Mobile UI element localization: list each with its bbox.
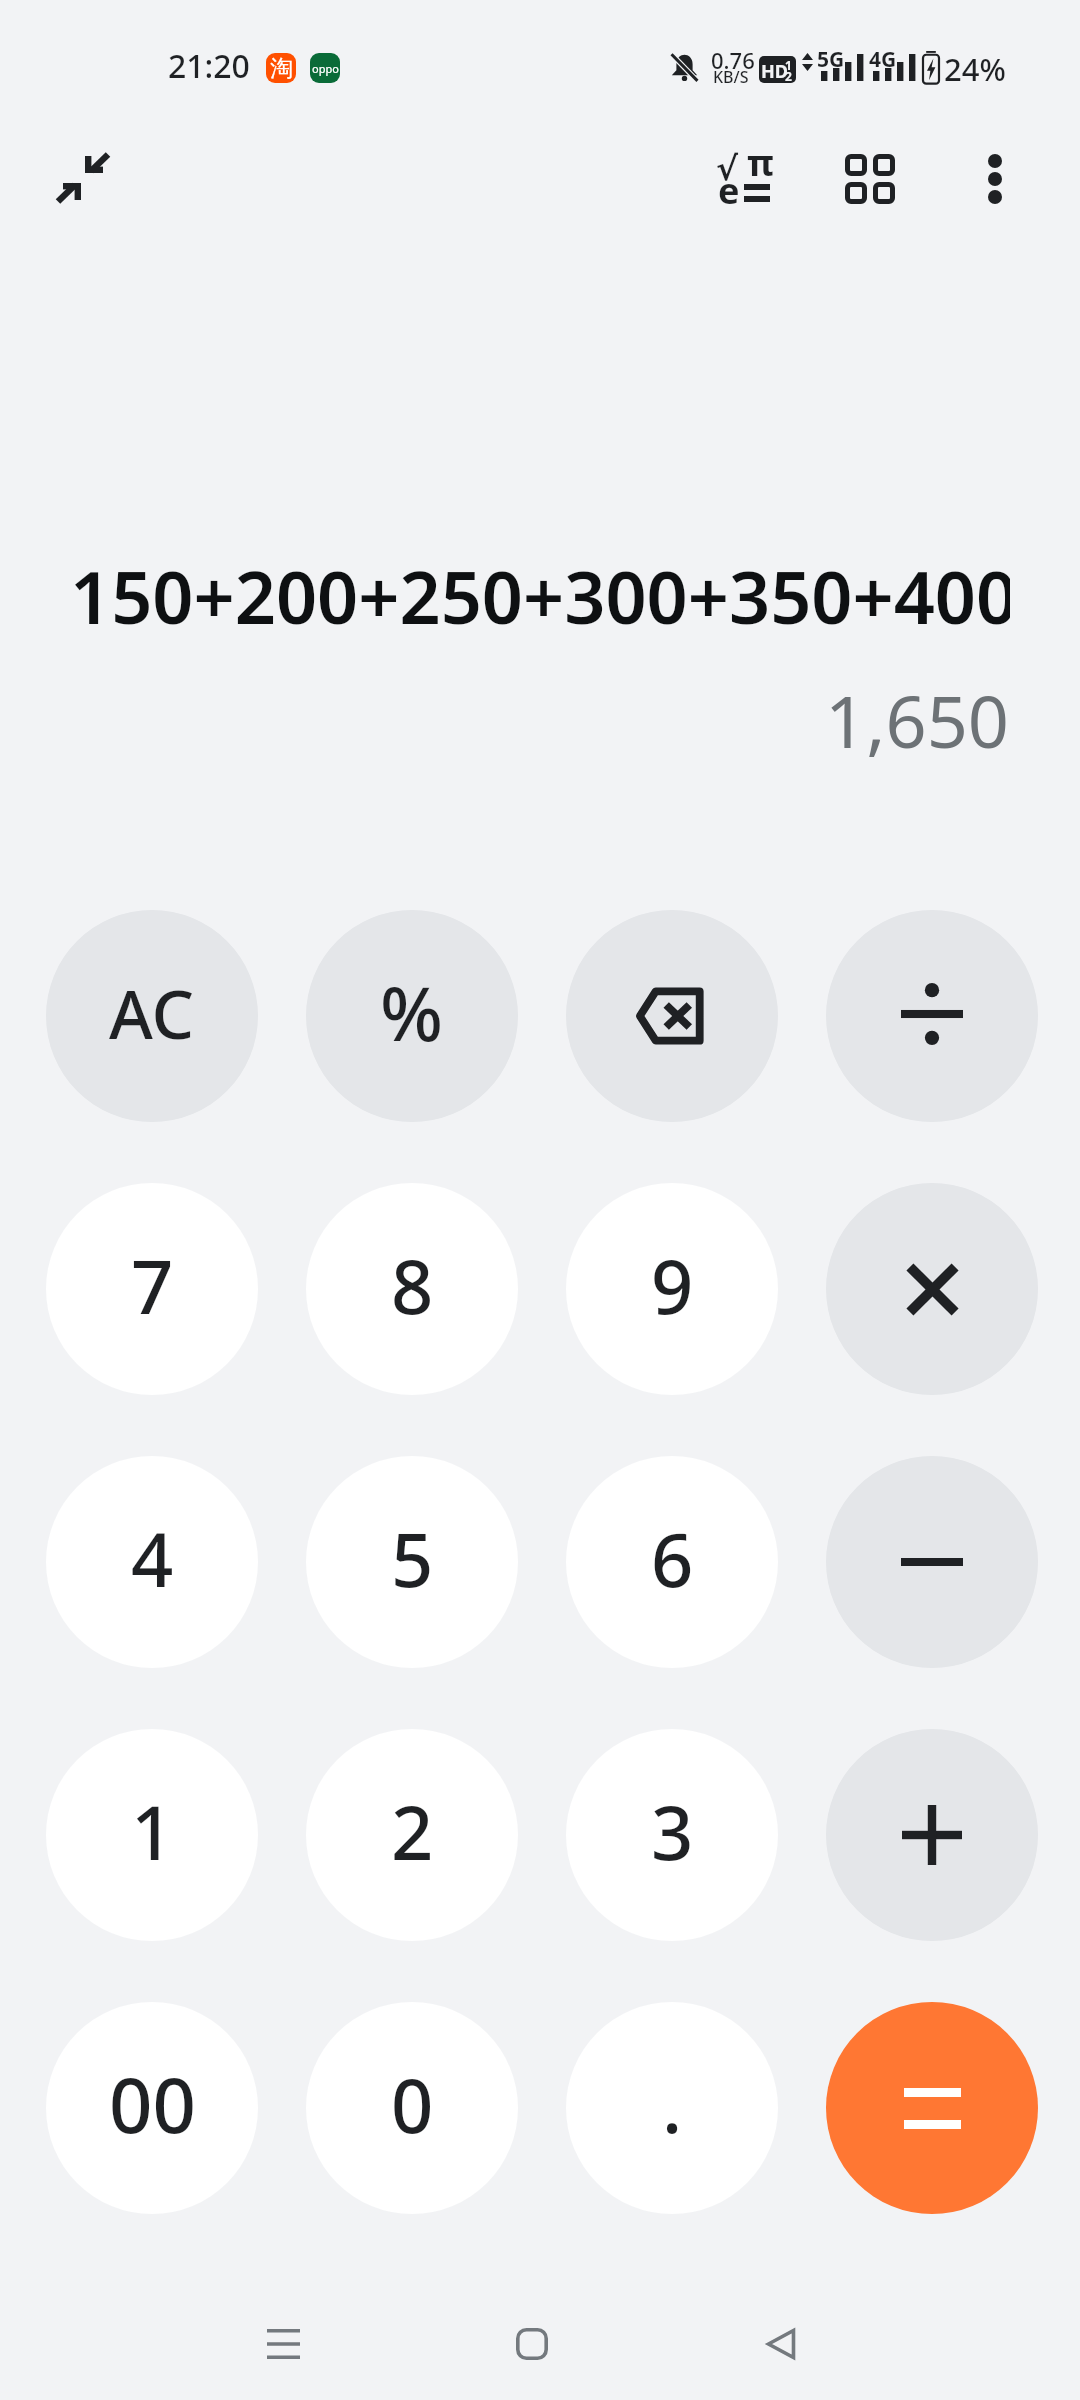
staticText: 0: [391, 2054, 434, 2155]
button[interactable]: More options: [940, 124, 1050, 234]
button[interactable]: 4: [46, 1456, 258, 1668]
button[interactable]: Equals: [826, 2002, 1038, 2214]
staticText: 7: [131, 1235, 174, 1336]
staticText: 4G: [869, 45, 909, 74]
staticText: 4: [131, 1508, 174, 1609]
staticText: 24%: [944, 48, 1006, 90]
button[interactable]: Subtract: [826, 1456, 1038, 1668]
staticText: 1: [131, 1781, 174, 1882]
staticText: AC: [109, 967, 195, 1058]
button[interactable]: Backspace: [566, 910, 778, 1122]
button[interactable]: 3: [566, 1729, 778, 1941]
staticText: oppo: [312, 61, 339, 76]
button[interactable]: Multiply: [826, 1183, 1038, 1395]
staticText: 21:20: [168, 44, 250, 88]
button[interactable]: 5: [306, 1456, 518, 1668]
staticText: 淘: [270, 54, 293, 83]
button[interactable]: Home: [442, 2289, 622, 2399]
staticText: 5G: [817, 45, 857, 74]
button[interactable]: 8: [306, 1183, 518, 1395]
button[interactable]: Scientific mode: [690, 124, 800, 234]
button[interactable]: Recents: [193, 2289, 373, 2399]
button[interactable]: Divide: [826, 910, 1038, 1122]
button[interactable]: Back: [691, 2289, 871, 2399]
button[interactable]: AC: [46, 910, 258, 1122]
staticText: π: [747, 138, 774, 187]
staticText: .: [662, 2054, 683, 2155]
staticText: 150+200+250+300+350+400: [70, 547, 1010, 645]
staticText: 1: [785, 57, 792, 73]
button[interactable]: .: [566, 2002, 778, 2214]
staticText: KB/S: [713, 66, 749, 88]
button[interactable]: %: [306, 910, 518, 1122]
button[interactable]: 9: [566, 1183, 778, 1395]
button[interactable]: 6: [566, 1456, 778, 1668]
staticText: 5: [391, 1508, 434, 1609]
staticText: 0.76: [711, 45, 755, 75]
staticText: %: [380, 962, 444, 1063]
button[interactable]: History: [815, 124, 925, 234]
staticText: 6: [651, 1508, 694, 1609]
staticText: √: [716, 149, 739, 187]
button[interactable]: 2: [306, 1729, 518, 1941]
button[interactable]: 7: [46, 1183, 258, 1395]
button[interactable]: 00: [46, 2002, 258, 2214]
button[interactable]: Add: [826, 1729, 1038, 1941]
staticText: 2: [785, 68, 792, 83]
button[interactable]: Collapse: [28, 123, 138, 233]
staticText: 3: [651, 1781, 694, 1882]
button[interactable]: 1: [46, 1729, 258, 1941]
staticText: e: [718, 166, 740, 215]
staticText: 9: [651, 1235, 694, 1336]
staticText: 1,650: [69, 671, 1009, 769]
staticText: 8: [391, 1235, 434, 1336]
staticText: HD: [761, 59, 788, 83]
staticText: 00: [109, 2052, 196, 2156]
staticText: 2: [391, 1781, 434, 1882]
button[interactable]: 0: [306, 2002, 518, 2214]
